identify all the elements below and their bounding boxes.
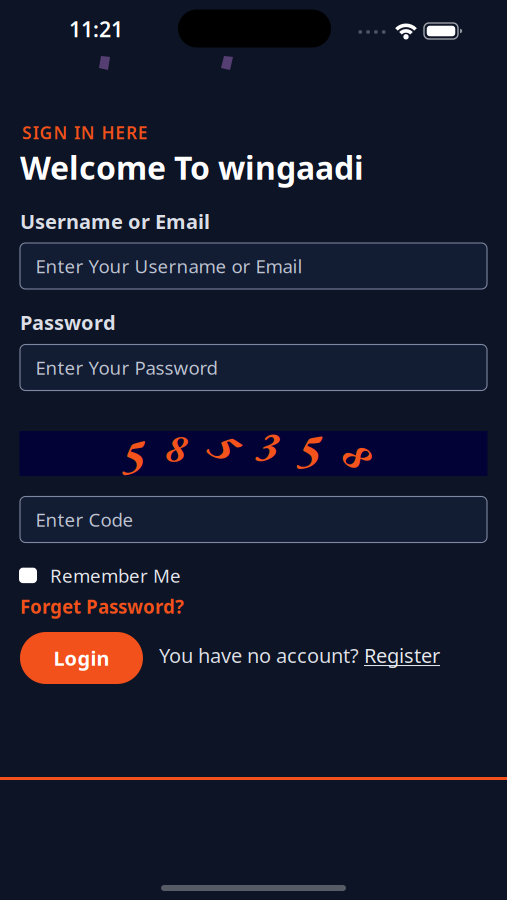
button[interactable]: Forget Password? [20, 594, 184, 619]
button[interactable]: Enter Code [20, 496, 487, 542]
staticText: SIGN IN HERE [22, 121, 148, 144]
staticText: You have no account? [159, 642, 359, 669]
staticText: 5 [120, 424, 145, 487]
staticText: Enter Your Username or Email [35, 254, 302, 278]
staticText: 11:21 [69, 15, 123, 43]
staticText: Forget Password? [20, 594, 184, 619]
staticText: Remember Me [50, 563, 181, 588]
staticText: 8 [347, 428, 369, 482]
staticText: Enter Code [35, 507, 133, 532]
button[interactable]: Register [364, 642, 440, 669]
staticText: Login [53, 645, 109, 671]
staticText: 3 [257, 418, 280, 473]
button[interactable]: Enter Your Username or Email [20, 243, 487, 289]
button[interactable]: Login [20, 632, 143, 684]
staticText: Register [364, 642, 440, 669]
staticText: Password [20, 309, 116, 336]
button[interactable]: Remember Me [19, 563, 181, 588]
staticText: 8 [166, 421, 187, 474]
staticText: Enter Your Password [35, 355, 217, 380]
staticText: Username or Email [20, 208, 210, 235]
button[interactable]: Enter Your Password [20, 344, 487, 390]
staticText: 5 [214, 417, 237, 475]
staticText: 5 [296, 419, 321, 481]
staticText: Welcome To wingaadi [20, 146, 364, 188]
